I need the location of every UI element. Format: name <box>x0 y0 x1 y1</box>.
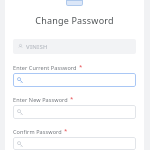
staticText: Confirm Password <box>13 128 62 135</box>
button[interactable]: Password <box>13 73 136 87</box>
staticText: * <box>79 63 83 71</box>
staticText: * <box>70 95 74 103</box>
staticText: Enter Current Password <box>13 64 77 71</box>
staticText: * <box>64 127 68 135</box>
staticText: VINISH <box>26 43 48 51</box>
button[interactable]: Password <box>13 105 136 119</box>
other: Password <box>17 109 23 115</box>
other: Password <box>17 77 23 83</box>
other: Password <box>17 141 23 147</box>
staticText: Change Password <box>35 14 114 26</box>
other: User <box>18 44 23 49</box>
button[interactable]: User <box>13 39 136 54</box>
staticText: Enter New Password <box>13 96 68 103</box>
button[interactable]: Password <box>13 137 136 150</box>
